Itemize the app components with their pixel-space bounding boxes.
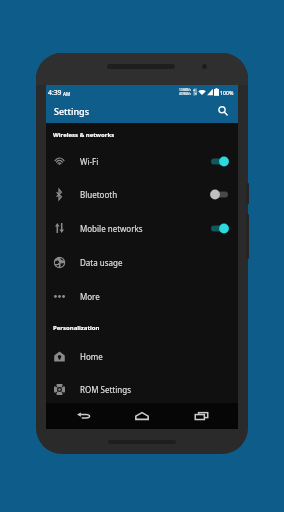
button[interactable]: Back — [68, 403, 98, 429]
button[interactable]: More — [46, 279, 238, 313]
button[interactable]: Data usage — [46, 245, 238, 279]
button[interactable]: Wi-Fi — [46, 144, 238, 178]
button[interactable]: Search — [213, 101, 233, 121]
button[interactable]: Recents — [186, 403, 216, 429]
staticText: Wi-Fi — [80, 156, 99, 167]
staticText: Personalization — [53, 324, 100, 332]
staticText: Data usage — [80, 257, 123, 268]
staticText: Home — [80, 351, 103, 362]
button[interactable]: Mobile networks — [46, 211, 238, 245]
staticText: 1368B/s — [179, 88, 192, 92]
staticText: 4096B/s — [179, 92, 192, 96]
button[interactable]: Home — [46, 339, 238, 373]
staticText: Bluetooth — [80, 189, 118, 200]
staticText: 100% — [220, 89, 234, 96]
staticText: ROM Settings — [80, 384, 131, 395]
staticText: Mobile networks — [80, 223, 143, 234]
button[interactable]: ROM Settings — [46, 372, 238, 406]
staticText: More — [80, 291, 100, 302]
staticText: AM — [63, 91, 71, 97]
staticText: Settings — [54, 105, 90, 117]
staticText: Wireless & networks — [53, 131, 115, 139]
button[interactable]: Bluetooth — [46, 177, 238, 211]
staticText: 4:39 — [48, 88, 62, 97]
button[interactable]: Home — [127, 403, 157, 429]
